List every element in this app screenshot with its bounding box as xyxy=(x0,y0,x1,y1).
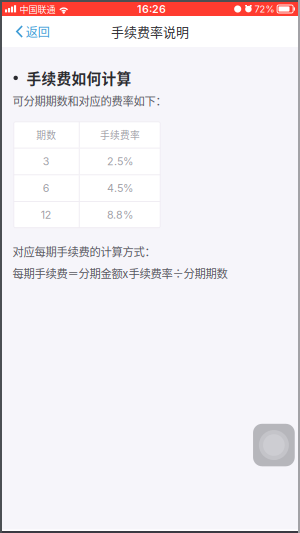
staticText: 返回 xyxy=(26,23,50,40)
staticText: 8.8% xyxy=(107,208,133,221)
staticText: 手续费率 xyxy=(100,128,140,142)
staticText: 2.5% xyxy=(107,155,133,168)
staticText: 16:26 xyxy=(137,2,166,15)
staticText: 可分期期数和对应的费率如下： xyxy=(12,92,166,109)
staticText: 对应每期手续费的计算方式： xyxy=(12,243,155,259)
staticText: 手续费率说明 xyxy=(111,22,189,41)
staticText: 4.5% xyxy=(107,182,133,195)
staticText: 每期手续费＝分期金额x手续费率÷分期期数 xyxy=(12,265,227,281)
button[interactable]: AssistiveTouch xyxy=(253,424,295,466)
staticText: 6 xyxy=(43,182,50,195)
staticText: 12 xyxy=(41,208,52,221)
button[interactable]: 返回 xyxy=(0,16,58,47)
staticText: 中国联通 xyxy=(19,2,55,15)
staticText: 3 xyxy=(43,155,50,168)
staticText: 手续费如何计算 xyxy=(26,67,131,88)
staticText: 期数 xyxy=(36,128,56,142)
staticText: 72% xyxy=(254,3,274,15)
